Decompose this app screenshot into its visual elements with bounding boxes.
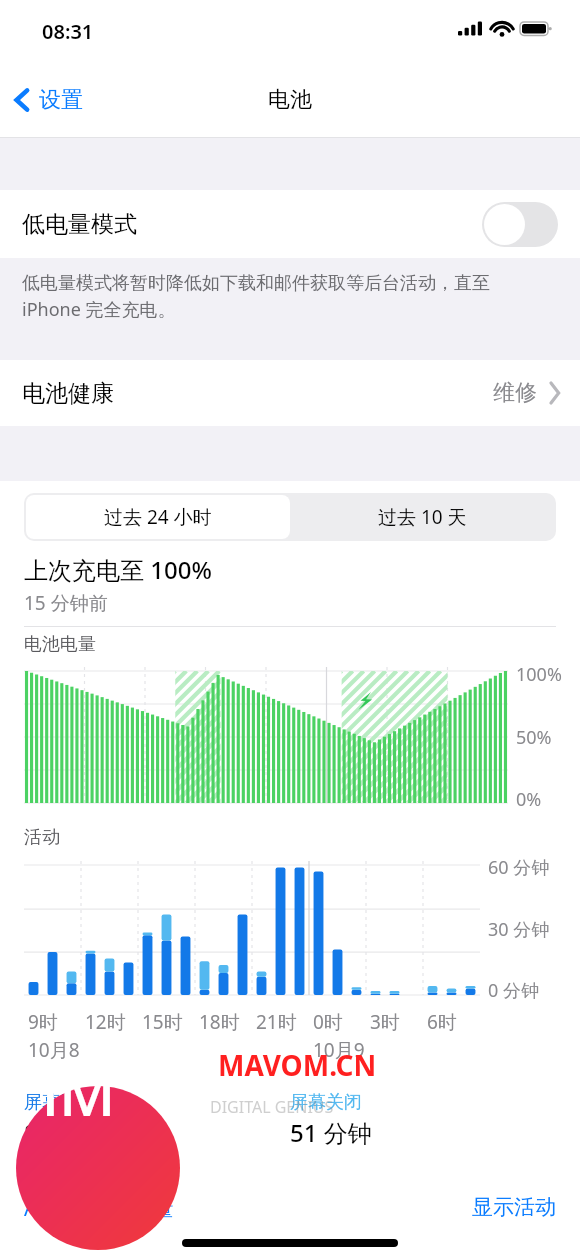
button[interactable]: 过去 24 小时 — [26, 495, 290, 539]
staticText: 过去 24 小时 — [104, 504, 212, 530]
staticText: 低电量模式 — [22, 210, 137, 239]
staticText: 0% — [516, 787, 542, 812]
staticText: DIGITAL GENIUS — [210, 1096, 334, 1118]
staticText: 100% — [516, 662, 562, 687]
staticText: 51 分钟 — [290, 1116, 372, 1149]
staticText: 设置 — [39, 86, 83, 114]
staticText: 10月8日 — [28, 1037, 81, 1061]
button[interactable]: 低电量模式 — [0, 190, 580, 258]
staticText: 21时 — [256, 1009, 297, 1035]
staticText: 维修 — [493, 379, 537, 407]
button[interactable]: 显示活动 — [472, 1194, 556, 1220]
staticText: 0 分钟 — [488, 978, 539, 1003]
staticText: 60 分钟 — [488, 855, 550, 880]
staticText: iM — [42, 1050, 116, 1134]
staticText: App 的电池用量 — [24, 1194, 174, 1223]
button[interactable]: 过去 10 天 — [290, 495, 554, 539]
staticText: 8 小时 6 分钟 — [24, 1116, 167, 1149]
staticText: 08:31 — [42, 18, 94, 45]
button[interactable]: 设置 — [0, 80, 97, 120]
staticText: 过去 10 天 — [378, 504, 467, 530]
staticText: 18时 — [199, 1009, 240, 1035]
staticText: 15时 — [142, 1009, 183, 1035]
staticText: 屏幕关闭 — [290, 1091, 362, 1114]
staticText: 6时 — [427, 1009, 457, 1035]
staticText: 活动 — [24, 826, 60, 849]
staticText: 3时 — [370, 1009, 400, 1035]
button[interactable] — [482, 202, 558, 247]
staticText: 电池健康 — [22, 379, 114, 408]
staticText: 上次充电至 100% — [24, 553, 212, 586]
staticText: 9时 — [28, 1009, 58, 1035]
staticText: 电池电量 — [24, 633, 96, 656]
staticText: MAVOM.CN — [218, 1046, 377, 1084]
staticText: 10月9日 — [313, 1037, 366, 1061]
staticText: 0时 — [313, 1009, 343, 1035]
staticText: 15 分钟前 — [24, 590, 108, 616]
button[interactable]: 电池健康 — [0, 360, 580, 426]
staticText: 50% — [516, 725, 552, 750]
staticText: 屏幕开启 — [24, 1091, 96, 1114]
staticText: 30 分钟 — [488, 917, 550, 942]
staticText: 电池 — [268, 86, 312, 114]
staticText: 12时 — [85, 1009, 126, 1035]
staticText: 低电量模式将暂时降低如下载和邮件获取等后台活动，直至 iPhone 完全充电。 — [22, 270, 550, 322]
